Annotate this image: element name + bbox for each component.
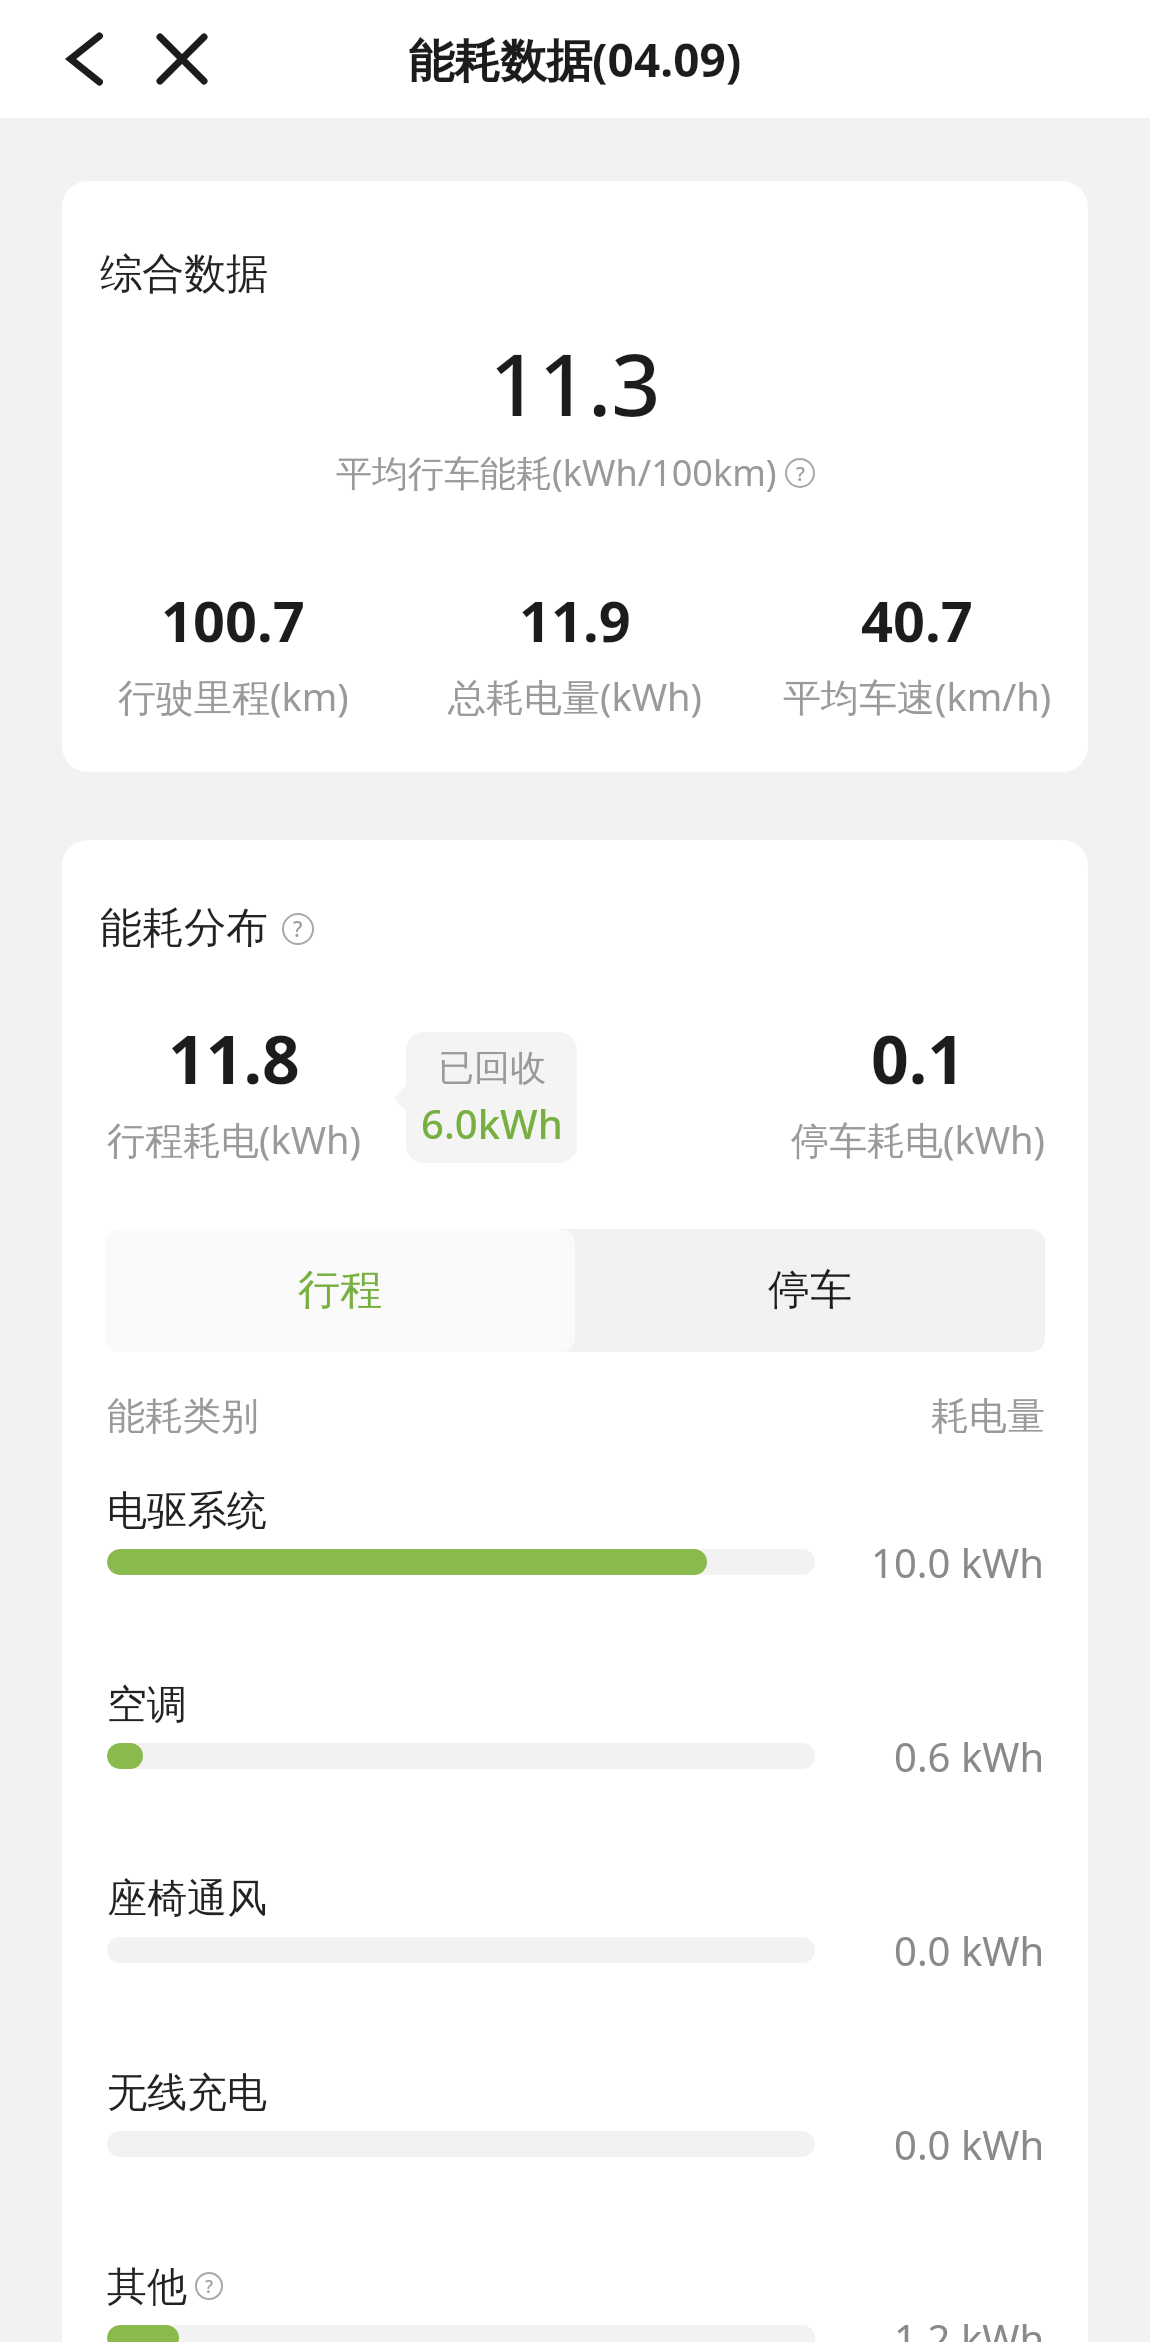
staticText: 40.7 xyxy=(861,582,973,658)
staticText: 11.3 xyxy=(62,324,1088,441)
staticText: 空调 xyxy=(107,1679,187,1729)
staticText: 0.1 xyxy=(871,1013,966,1103)
staticText: 其他 xyxy=(107,2261,187,2311)
staticText: 100.7 xyxy=(161,582,305,658)
staticText: 停车耗电(kWh) xyxy=(791,1113,1045,1165)
staticText: 0.6 kWh xyxy=(894,1729,1045,1783)
staticText: 总耗电量(kWh) xyxy=(448,670,702,722)
staticText: 座椅通风 xyxy=(107,1873,267,1923)
staticText: 无线充电 xyxy=(107,2067,267,2117)
staticText: 停车 xyxy=(768,1264,852,1317)
staticText: 能耗类别 xyxy=(107,1392,259,1440)
staticText: 电驱系统 xyxy=(107,1485,267,1535)
staticText: 0.0 kWh xyxy=(894,2117,1045,2171)
staticText: ? xyxy=(205,2274,214,2299)
staticText: 平均车速(km/h) xyxy=(783,670,1052,722)
staticText: 10.0 kWh xyxy=(871,1535,1045,1589)
staticText: 11.8 xyxy=(168,1013,300,1103)
button[interactable]: 行程 xyxy=(105,1229,575,1352)
staticText: 行驶里程(km) xyxy=(118,670,349,722)
staticText: 6.0kWh xyxy=(421,1096,563,1150)
button[interactable] xyxy=(154,31,210,87)
staticText: 1.2 kWh xyxy=(894,2311,1045,2342)
staticText: 已回收 xyxy=(438,1045,546,1090)
staticText: 0.0 kWh xyxy=(894,1923,1045,1977)
staticText: 行程 xyxy=(298,1264,382,1317)
staticText: 行程耗电(kWh) xyxy=(107,1113,361,1165)
staticText: 综合数据 xyxy=(100,248,268,301)
button[interactable]: 停车 xyxy=(575,1229,1045,1352)
staticText: ? xyxy=(293,915,303,944)
staticText: 平均行车能耗(kWh/100km) xyxy=(336,448,777,497)
staticText: 能耗数据(04.09) xyxy=(408,28,742,91)
staticText: 能耗分布 xyxy=(100,902,268,955)
button[interactable] xyxy=(57,31,113,87)
staticText: 11.9 xyxy=(519,582,631,658)
staticText: ? xyxy=(796,460,805,487)
staticText: 耗电量 xyxy=(931,1392,1045,1440)
